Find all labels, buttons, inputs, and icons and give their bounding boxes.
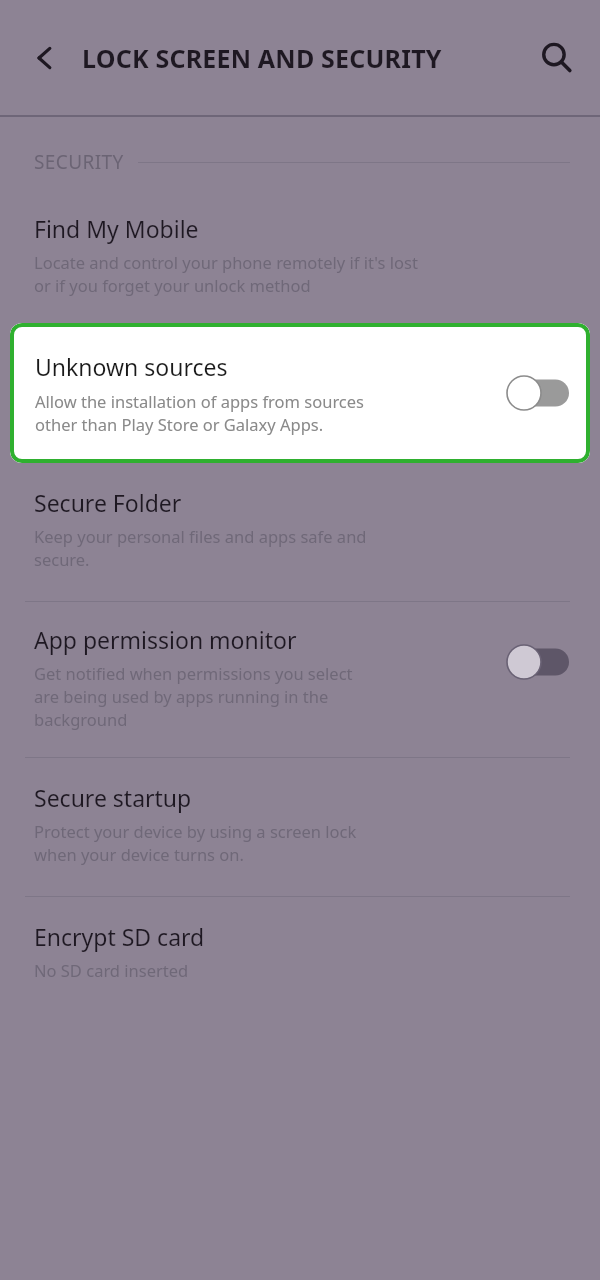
staticText: Get notified when permissions you select… (34, 662, 353, 731)
button[interactable]: App permission monitor toggle (500, 634, 576, 690)
staticText: No SD card inserted (34, 959, 189, 981)
staticText: Secure Folder (34, 487, 182, 518)
button[interactable]: Secure Folder (0, 487, 600, 571)
staticText: Secure startup (34, 782, 192, 813)
button[interactable]: Secure startup (0, 782, 600, 866)
staticText: Find My Mobile (34, 213, 199, 244)
button[interactable]: Unknown sources toggle (500, 365, 576, 421)
staticText: Locate and control your phone remotely i… (34, 251, 418, 297)
staticText: Allow the installation of apps from sour… (35, 390, 364, 436)
staticText: SECURITY (34, 149, 124, 175)
button[interactable]: Unknown sources (10, 323, 590, 463)
button[interactable]: Find My Mobile (0, 213, 600, 297)
staticText: App permission monitor (34, 624, 297, 655)
staticText: Keep your personal files and apps safe a… (34, 525, 367, 571)
button[interactable]: Search (526, 27, 588, 89)
staticText: LOCK SCREEN AND SECURITY (82, 41, 442, 75)
button[interactable]: Back (14, 27, 76, 89)
staticText: Protect your device by using a screen lo… (34, 820, 357, 866)
staticText: Encrypt SD card (34, 921, 205, 952)
staticText: Unknown sources (35, 351, 228, 382)
button[interactable]: Encrypt SD card (0, 921, 600, 981)
